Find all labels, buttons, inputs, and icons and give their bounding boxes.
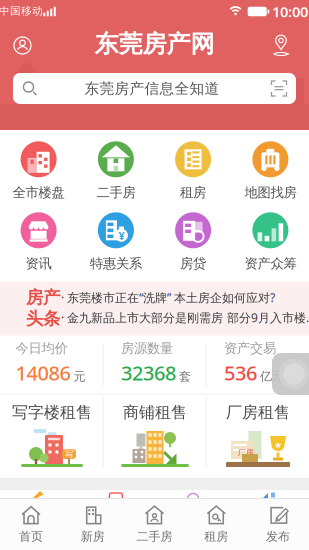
staticText: 今日均价 [15, 340, 67, 356]
staticText: 地图找房 [244, 184, 296, 201]
staticText: 房产 [26, 287, 60, 308]
staticText: 二手房 [136, 529, 172, 544]
button[interactable]: · 东莞楼市正在“洗牌” 本土房企如何应对? [61, 289, 309, 305]
staticText: 14086 [15, 359, 70, 386]
button[interactable]: 发布 [249, 501, 307, 547]
button[interactable]: 租房 [187, 501, 245, 547]
button[interactable]: 全市楼盘 [4, 139, 74, 203]
staticText: 套 [179, 369, 191, 384]
staticText: 租房 [204, 529, 228, 544]
staticText: 写字楼租售 [12, 403, 92, 422]
button[interactable]: 厂房租售 [206, 394, 308, 478]
button[interactable]: 个人中心 [9, 32, 35, 58]
staticText: 房源数量 [121, 340, 173, 356]
staticText: 东莞房产网 [94, 29, 214, 59]
staticText: 资讯 [26, 255, 52, 272]
staticText: 发布 [266, 529, 290, 544]
staticText: 新房 [81, 529, 105, 544]
staticText: 租房 [180, 184, 206, 201]
button[interactable]: 新房 [64, 501, 122, 547]
button[interactable]: 悬浮按钮 [272, 353, 309, 395]
staticText: 资产众筹 [244, 255, 296, 272]
button[interactable]: 写字楼租售 [0, 394, 102, 478]
button[interactable]: 地图找房 [235, 139, 305, 203]
staticText: 亿元 [260, 369, 284, 384]
button[interactable]: 东莞房产信息全知道 [13, 73, 296, 104]
staticText: 特惠关系 [90, 255, 142, 272]
staticText: 10:00 [272, 2, 308, 21]
button[interactable]: 房贷 [158, 210, 228, 274]
staticText: 中国移动 [0, 4, 43, 17]
staticText: ¥ [118, 229, 124, 243]
staticText: ★ [274, 440, 282, 450]
staticText: 元 [73, 369, 85, 384]
staticText: 东莞房产信息全知道 [84, 79, 219, 97]
button[interactable]: 首页 [2, 501, 60, 547]
staticText: 32368 [121, 359, 176, 386]
button[interactable]: 二手房 [125, 501, 183, 547]
staticText: 写 [64, 448, 73, 460]
button[interactable]: 选择城市 [268, 32, 294, 62]
staticText: 房贷 [180, 255, 206, 272]
staticText: 二手房 [96, 184, 135, 201]
button[interactable]: ¥ [81, 210, 151, 274]
button[interactable]: 资讯 [4, 210, 74, 274]
staticText: 536 [224, 359, 257, 386]
staticText: 商铺租售 [123, 403, 187, 422]
button[interactable]: 资产众筹 [235, 210, 305, 274]
staticText: 头条 [26, 308, 60, 329]
button[interactable]: · 金九新品上市大部分是刚需房 部分9月入市楼… [61, 309, 309, 325]
staticText: 厂房 [238, 448, 254, 457]
staticText: · 东莞楼市正在“洗牌” 本土房企如何应对? [61, 289, 275, 305]
button[interactable]: 租房 [158, 139, 228, 203]
staticText: 资产交易 [224, 340, 276, 356]
button[interactable]: 商铺租售 [103, 394, 205, 478]
staticText: 首页 [19, 529, 43, 544]
staticText: · 金九新品上市大部分是刚需房 部分9月入市楼… [61, 309, 309, 325]
button[interactable]: 二手房 [81, 139, 151, 203]
staticText: 厂房租售 [226, 403, 290, 422]
staticText: 全市楼盘 [13, 184, 65, 201]
